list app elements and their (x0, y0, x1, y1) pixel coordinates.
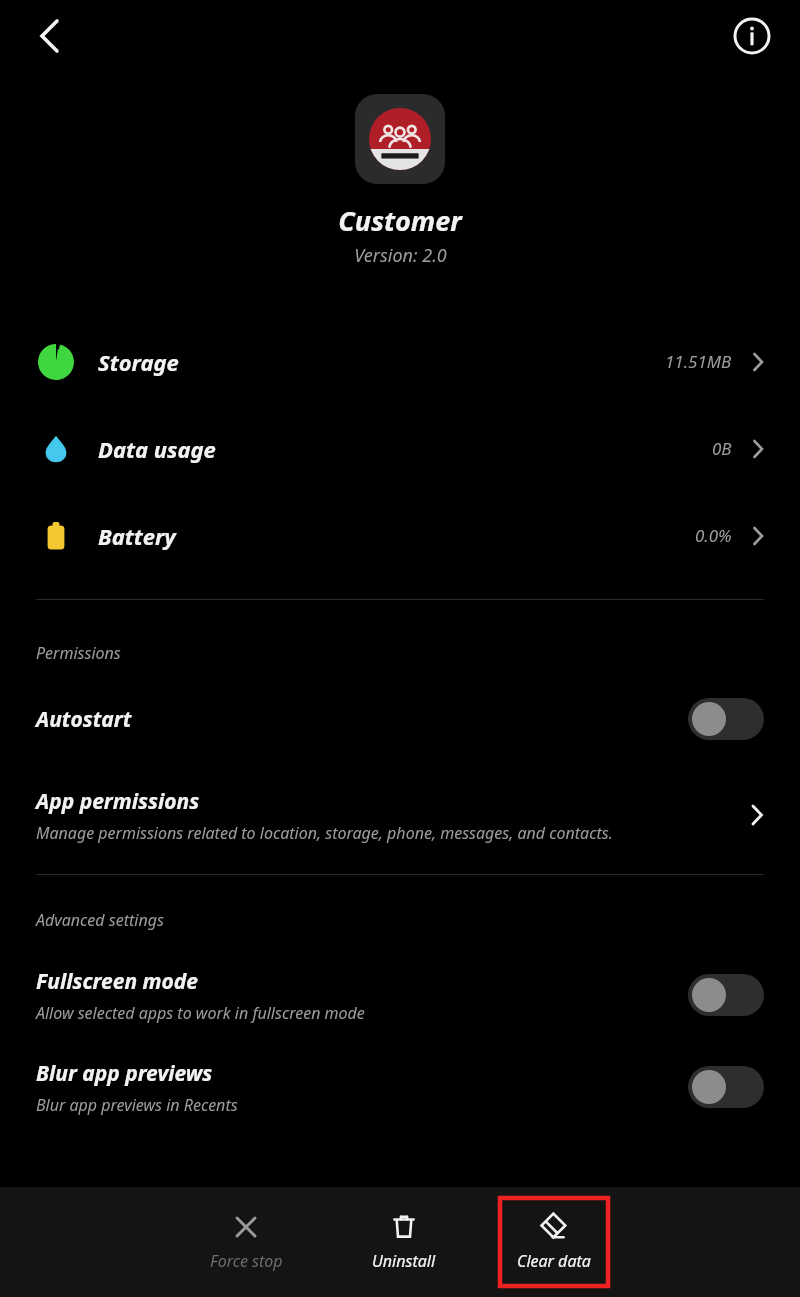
staticText: 11.51MB (665, 350, 732, 373)
staticText: Advanced settings (36, 909, 164, 931)
button[interactable]: Blur app previews (688, 1066, 764, 1108)
button[interactable]: App info (726, 10, 778, 62)
staticText: 0.0% (695, 524, 732, 547)
staticText: Data usage (98, 434, 216, 464)
button[interactable]: Clear data (500, 1198, 608, 1286)
staticText: App permissions (36, 787, 200, 816)
staticText: Blur app previews in Recents (36, 1094, 238, 1116)
staticText: Fullscreen mode (36, 967, 199, 996)
staticText: Permissions (36, 642, 121, 664)
staticText: Version: 2.0 (354, 243, 447, 268)
button[interactable]: Uninstall (350, 1198, 458, 1286)
staticText: Uninstall (372, 1250, 436, 1272)
staticText: Blur app previews (36, 1059, 213, 1088)
staticText: Customer (338, 202, 462, 239)
button[interactable]: Storage (0, 318, 800, 405)
staticText: Manage permissions related to location, … (36, 822, 613, 844)
button[interactable]: Fullscreen mode (688, 974, 764, 1016)
button[interactable]: Autostart (688, 698, 764, 740)
staticText: Force stop (210, 1250, 283, 1272)
staticText: 0B (712, 437, 732, 460)
button[interactable]: Autostart (0, 682, 800, 756)
button[interactable]: Fullscreen mode (0, 949, 800, 1041)
staticText: Allow selected apps to work in fullscree… (36, 1002, 365, 1024)
button[interactable]: Back (22, 8, 78, 64)
staticText: Storage (98, 347, 179, 377)
staticText: Clear data (517, 1250, 591, 1272)
button[interactable]: Battery (0, 492, 800, 579)
staticText: Battery (98, 521, 176, 551)
staticText: Autostart (36, 705, 132, 734)
button[interactable]: Data usage (0, 405, 800, 492)
button[interactable]: Force stop (192, 1198, 300, 1286)
button[interactable]: App permissions (0, 756, 800, 874)
button[interactable]: Blur app previews (0, 1041, 800, 1133)
